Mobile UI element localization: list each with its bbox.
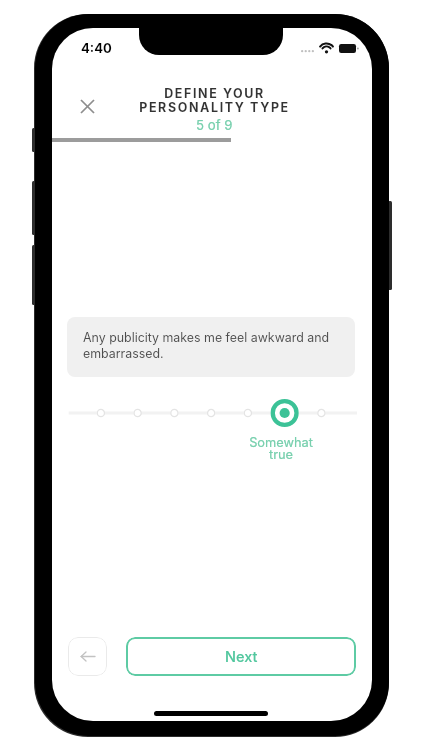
staticText: 5 of 9 — [196, 117, 233, 133]
button[interactable]: Any publicity makes me feel awkward and … — [67, 317, 355, 377]
staticText: 4:40 — [81, 40, 112, 56]
button[interactable]: Close — [73, 92, 102, 121]
button[interactable]: Back — [68, 637, 107, 676]
button[interactable]: Next — [126, 637, 356, 676]
staticText: DEFINE YOUR PERSONALITY TYPE — [139, 86, 290, 115]
staticText: Next — [225, 648, 258, 666]
staticText: Somewhat true — [249, 435, 313, 462]
staticText: Any publicity makes me feel awkward and … — [83, 330, 341, 361]
